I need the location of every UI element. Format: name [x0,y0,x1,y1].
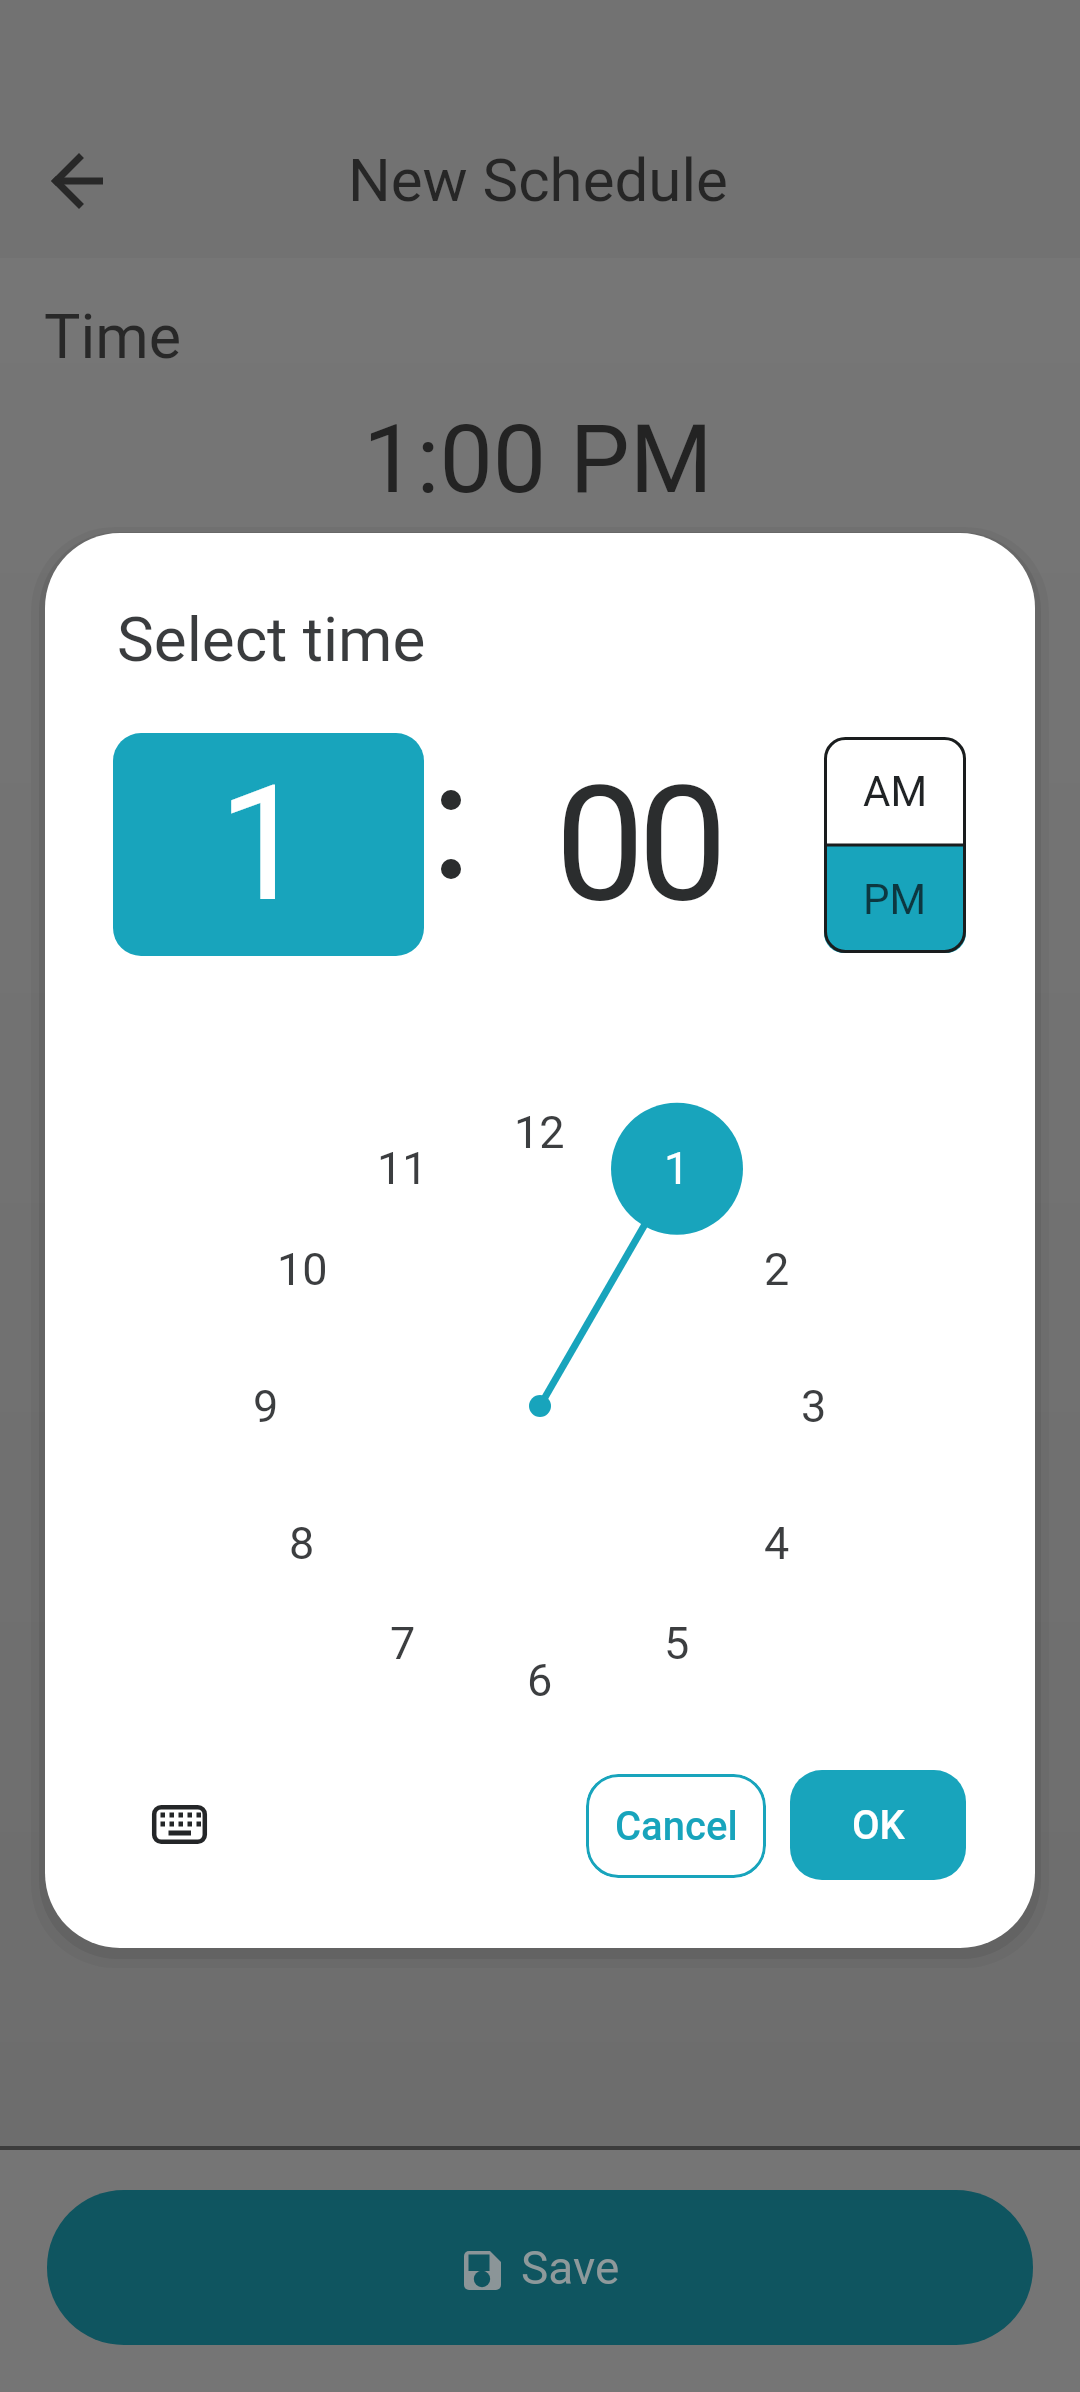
button[interactable]: OK [790,1770,966,1880]
staticText: 4 [764,1517,790,1570]
staticText: New Schedule [348,145,728,215]
staticText: 1 [664,1142,690,1195]
button[interactable]: 00 [482,733,793,956]
staticText: 11 [377,1142,428,1195]
staticText: PM [863,875,927,924]
staticText: 7 [390,1617,416,1670]
button[interactable]: 1 [113,733,424,956]
staticText: 3 [801,1380,827,1433]
staticText: 5 [664,1617,690,1670]
staticText: Save [521,2241,620,2295]
staticText: OK [852,1802,905,1849]
staticText: Cancel [615,1803,738,1850]
staticText: 1 [218,751,308,939]
button[interactable] [140,1787,220,1863]
button[interactable]: Save [47,2190,1033,2345]
staticText: 10 [277,1243,328,1296]
staticText: AM [863,767,928,816]
staticText: 12 [514,1106,565,1159]
staticText: Time [44,301,182,372]
staticText: Select time [117,603,426,676]
staticText: 6 [527,1654,553,1707]
button[interactable]: PM [824,845,966,953]
button[interactable]: Cancel [586,1774,766,1878]
staticText: 00 [555,751,721,939]
staticText: 2 [764,1243,790,1296]
button[interactable] [30,131,130,231]
staticText: 8 [289,1517,315,1570]
staticText: 9 [253,1380,279,1433]
button[interactable]: AM [824,737,966,845]
staticText: 1:00 PM [363,404,713,515]
